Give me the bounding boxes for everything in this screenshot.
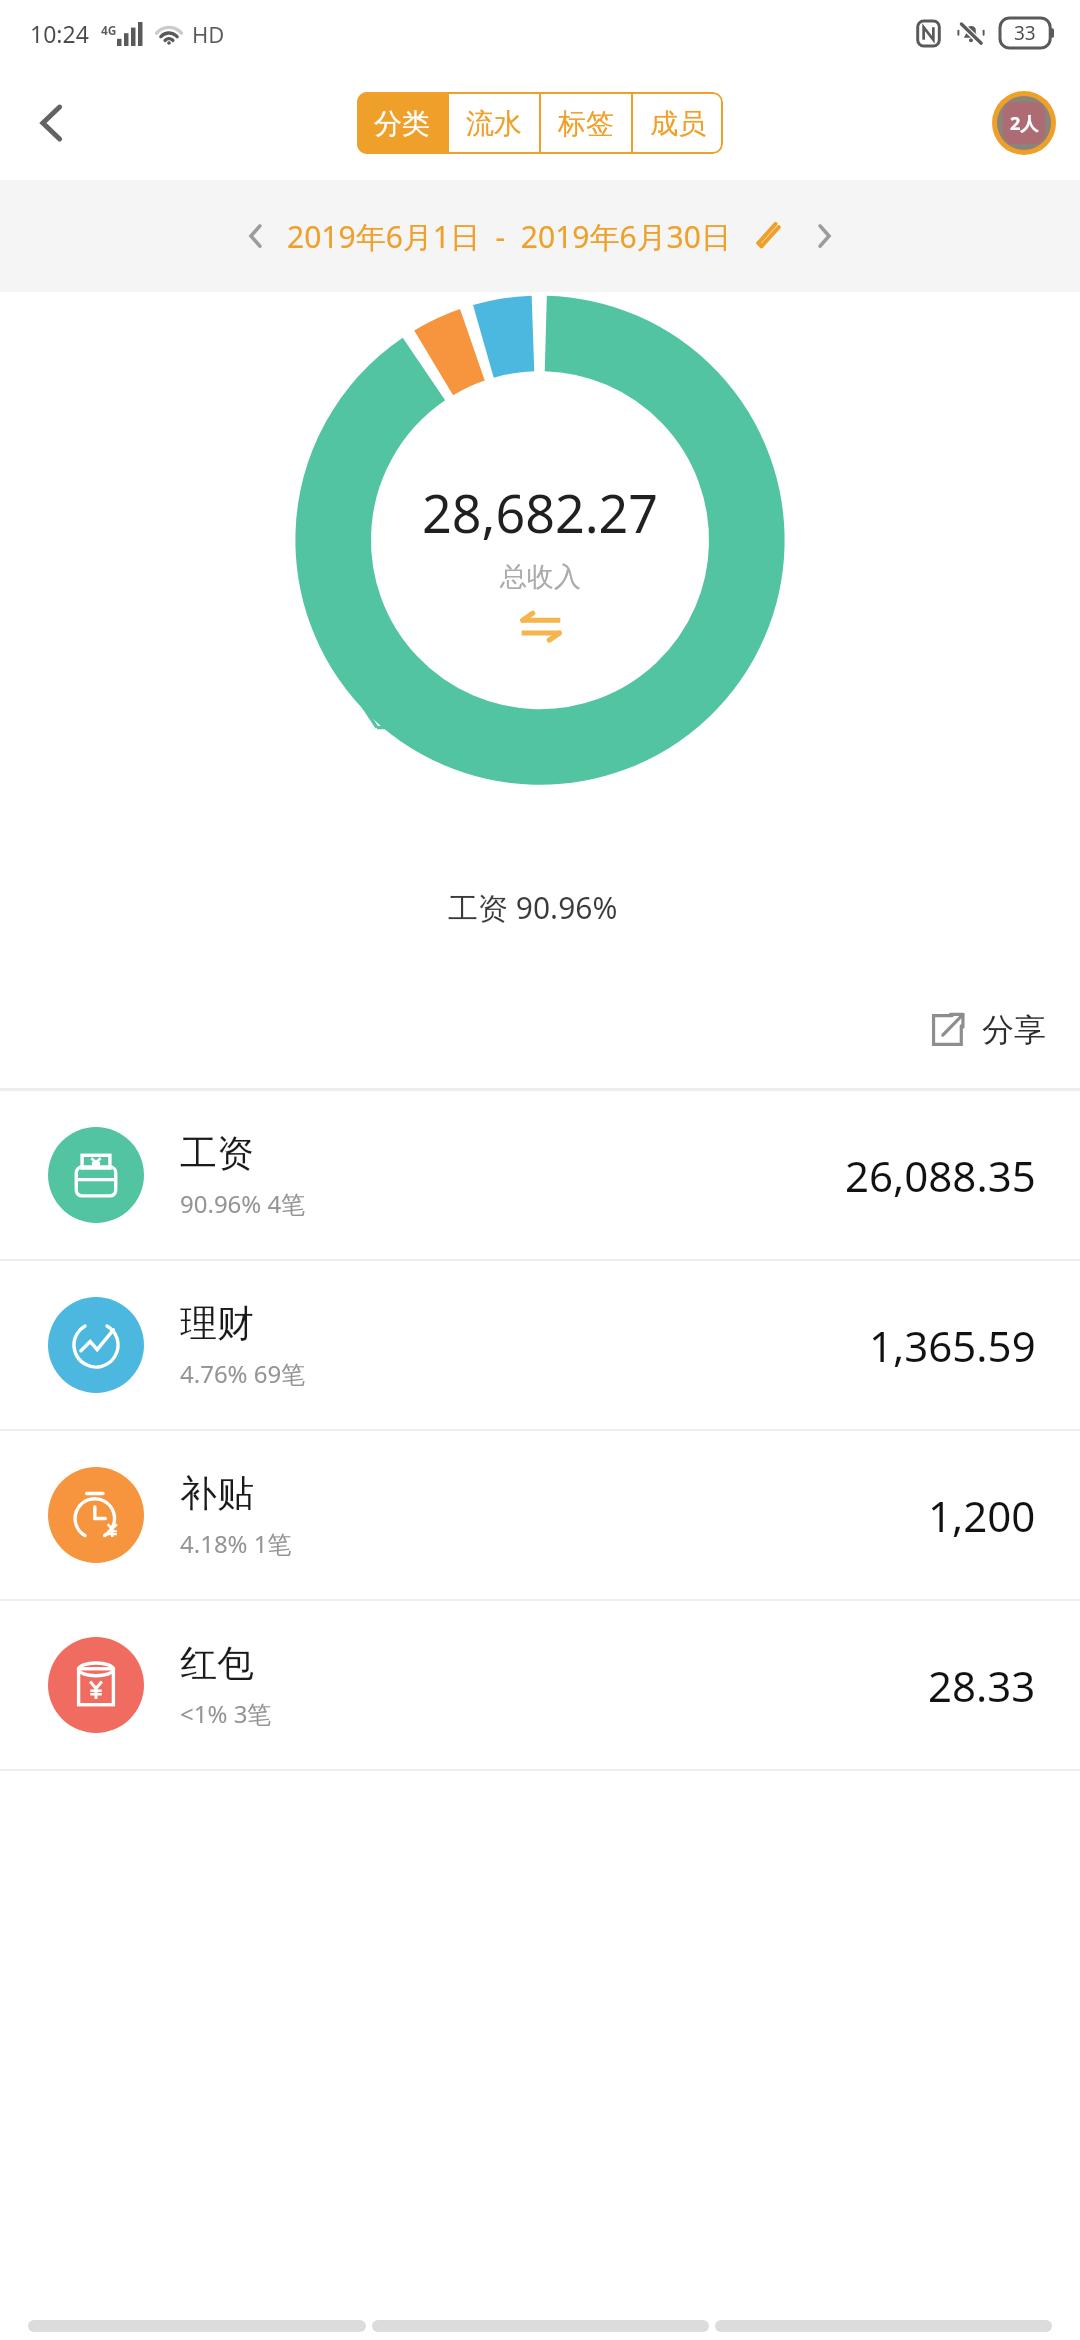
staticText: 红包 xyxy=(180,1640,254,1687)
staticText: 4.18% 1笔 xyxy=(180,1527,292,1560)
staticText: 理财 xyxy=(180,1300,254,1347)
staticText: 分类 xyxy=(374,106,430,141)
button[interactable]: 账本成员 xyxy=(992,91,1056,155)
staticText: 补贴 xyxy=(180,1470,254,1517)
staticText: 4G xyxy=(101,22,117,38)
button[interactable]: 编辑日期 xyxy=(743,213,789,259)
staticText: 标签 xyxy=(558,106,614,141)
staticText: 26,088.35 xyxy=(845,1147,1036,1204)
button[interactable]: 理财 xyxy=(0,1261,1080,1429)
staticText: 成员 xyxy=(650,106,706,141)
button[interactable]: 成员 xyxy=(633,92,723,154)
staticText: 工资 xyxy=(180,1130,254,1177)
button[interactable]: 流水 xyxy=(449,92,539,154)
staticText: 流水 xyxy=(466,106,522,141)
staticText: 工资 90.96% xyxy=(448,887,618,928)
staticText: 1,200 xyxy=(928,1487,1036,1544)
staticText: 10:24 xyxy=(30,18,89,49)
button[interactable]: 补贴 xyxy=(0,1431,1080,1599)
staticText: 90.96% 4笔 xyxy=(180,1187,306,1220)
staticText: 2人 xyxy=(1010,111,1039,136)
button[interactable]: 分类 xyxy=(357,92,447,154)
staticText: 28.33 xyxy=(928,1657,1036,1714)
button[interactable]: 分享 xyxy=(918,1003,1054,1057)
staticText: HD xyxy=(192,19,225,49)
staticText: 28,682.27 xyxy=(422,477,659,548)
staticText: 33 xyxy=(1014,20,1036,46)
button[interactable]: 红包 xyxy=(0,1601,1080,1769)
staticText: 4.76% 69笔 xyxy=(180,1357,306,1390)
button[interactable]: 下一期 xyxy=(795,207,853,265)
button[interactable]: 标签 xyxy=(541,92,631,154)
staticText: 1,365.59 xyxy=(869,1317,1036,1374)
button[interactable]: 上一期 xyxy=(227,207,285,265)
staticText: 分享 xyxy=(982,1010,1046,1050)
staticText: 2019年6月1日 - 2019年6月30日 xyxy=(287,216,731,257)
staticText: 总收入 xyxy=(500,560,581,594)
button[interactable]: 返回 xyxy=(12,83,92,163)
staticText: <1% 3笔 xyxy=(180,1697,272,1730)
button[interactable]: 工资 xyxy=(0,1091,1080,1259)
button[interactable]: 切换收支 xyxy=(515,606,567,646)
